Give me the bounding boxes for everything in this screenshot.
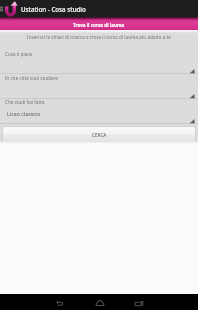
button[interactable]: Che studi hai fatto	[0, 99, 198, 124]
button[interactable]: Recents	[131, 294, 147, 310]
staticText: Ustation - Cosa studio	[21, 5, 86, 13]
staticText: Cosa ti piace	[5, 51, 33, 57]
staticText: In che città vuoi studiare	[5, 75, 58, 81]
button[interactable]: Cosa ti piace	[0, 47, 198, 74]
button[interactable]: Home	[92, 294, 108, 310]
staticText: CERCA	[92, 132, 107, 138]
staticText: Liceo classico	[7, 110, 41, 117]
staticText: Che studi hai fatto	[5, 99, 45, 105]
staticText: Trova il corso di laurea	[73, 22, 125, 28]
button[interactable]: Back	[51, 294, 67, 310]
button[interactable]: In che città vuoi studiare	[0, 74, 198, 99]
button[interactable]: CERCA	[3, 127, 195, 143]
staticText: Inserisci le chiavi di ricerca e trova i…	[6, 34, 192, 40]
button[interactable]: Menu	[0, 0, 5, 17]
